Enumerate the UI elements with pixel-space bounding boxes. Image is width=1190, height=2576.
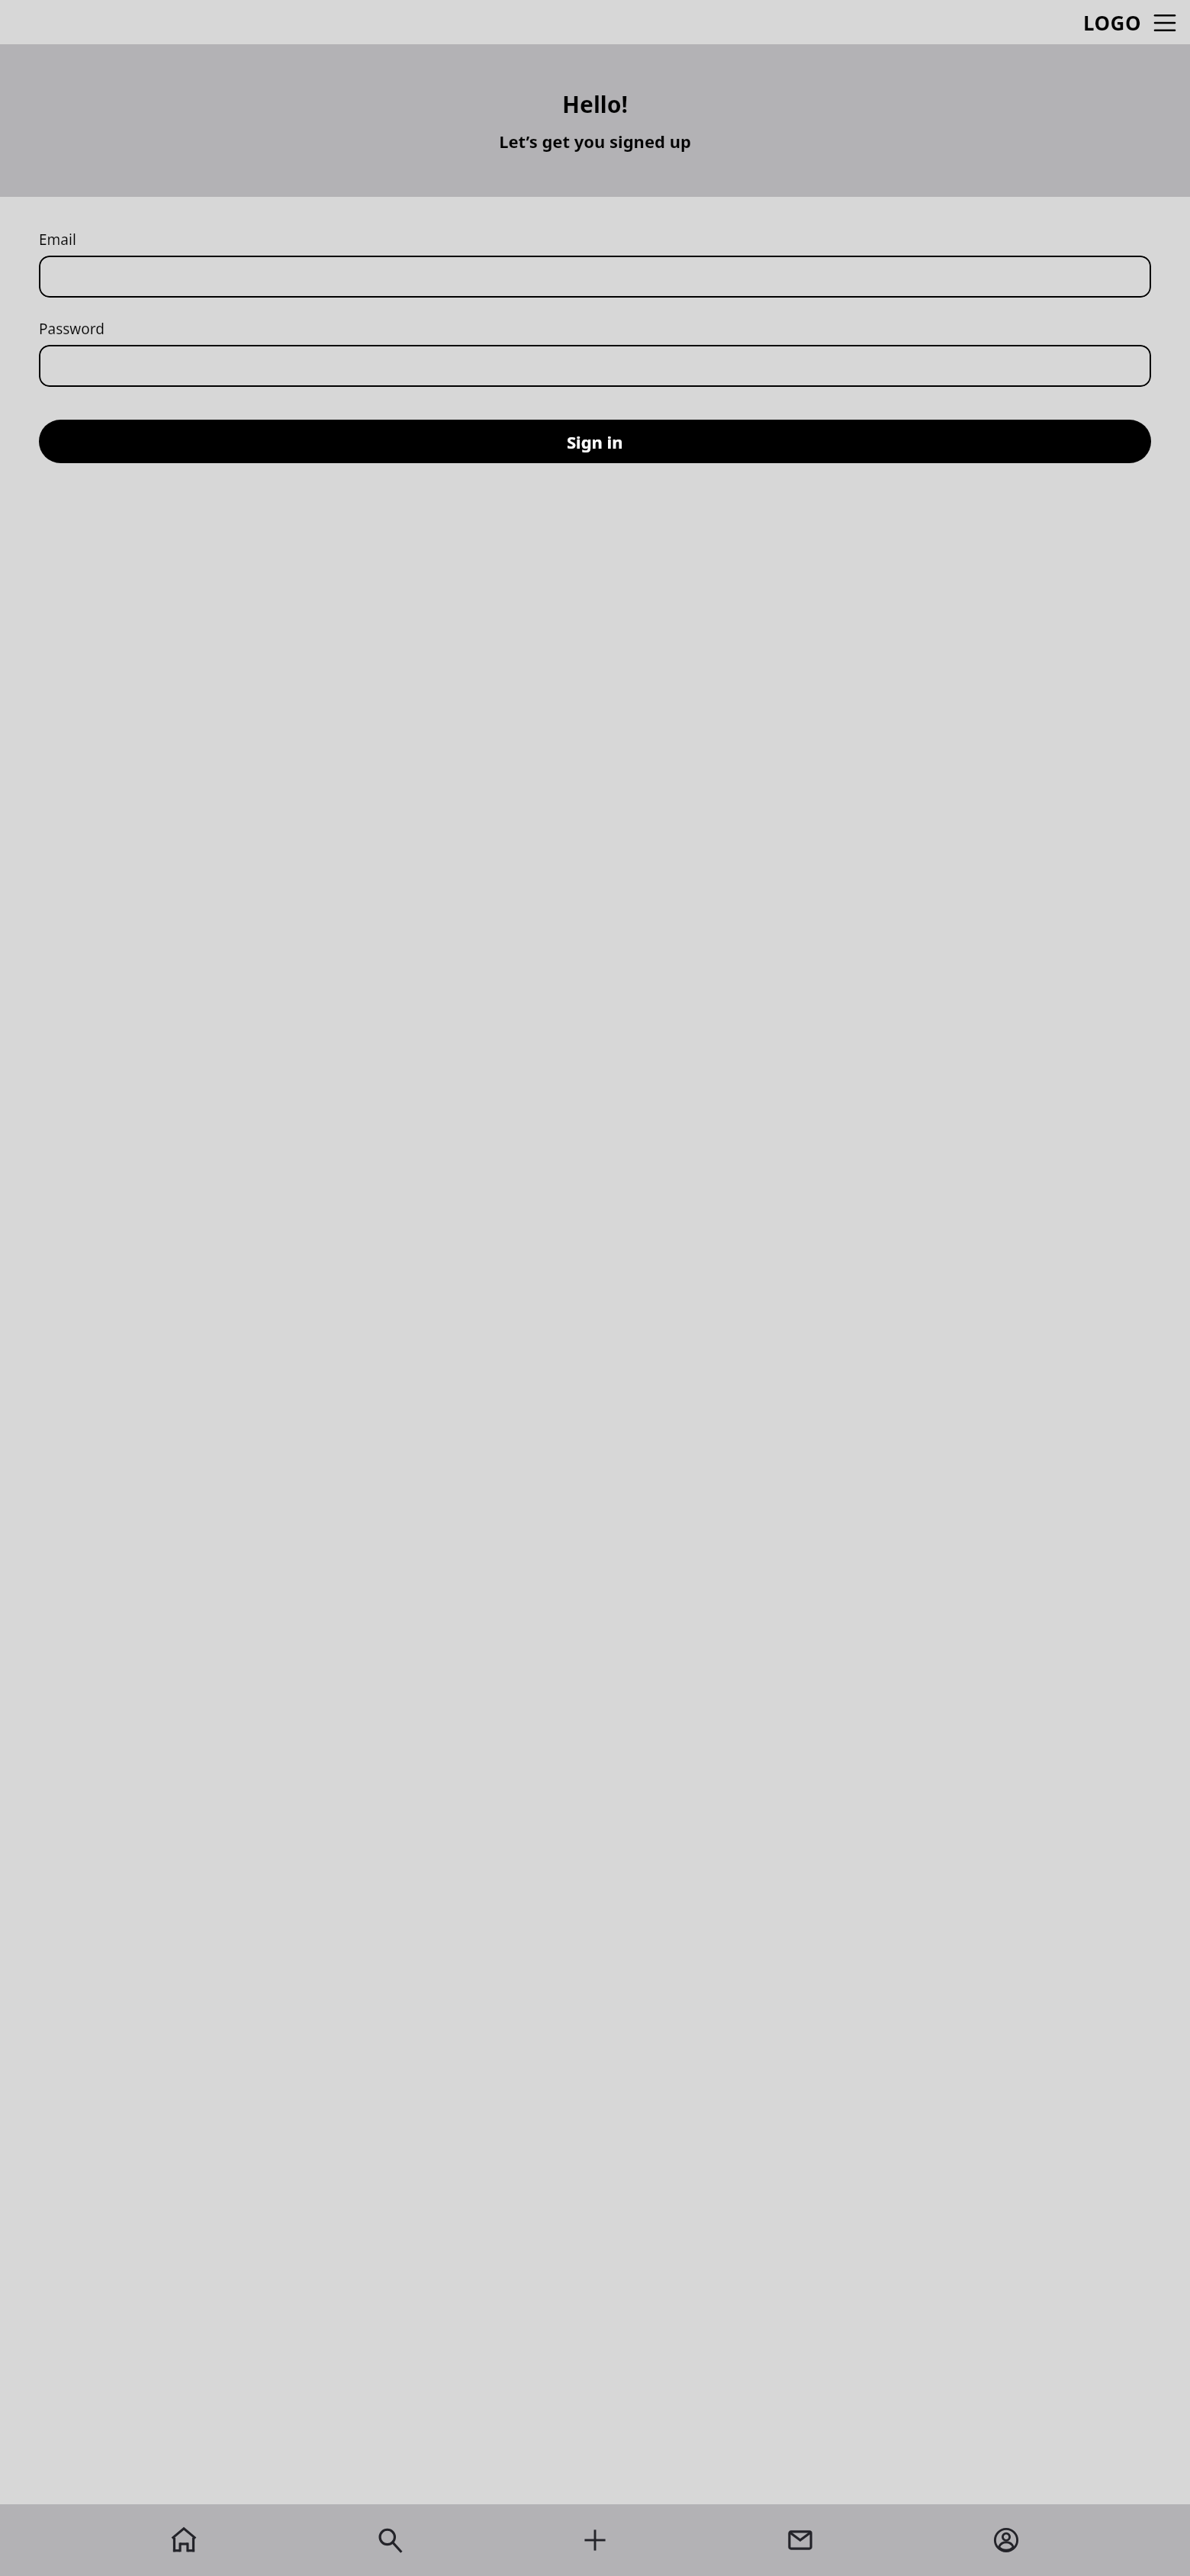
button[interactable]: Mail — [779, 2519, 822, 2562]
staticText: Email — [39, 230, 76, 250]
button[interactable]: Search — [368, 2519, 411, 2562]
button[interactable]: Add — [574, 2519, 616, 2562]
staticText: LOGO — [1083, 9, 1141, 36]
button[interactable]: Sign in — [39, 420, 1151, 463]
staticText: Let’s get you signed up — [499, 130, 691, 153]
staticText: Password — [39, 319, 105, 339]
button[interactable]: Profile — [985, 2519, 1028, 2562]
button[interactable] — [39, 345, 1151, 387]
button[interactable]: Home — [162, 2519, 205, 2562]
staticText: Sign in — [567, 430, 623, 453]
button[interactable]: Open menu — [1152, 10, 1178, 36]
staticText: Hello! — [562, 89, 628, 120]
button[interactable] — [39, 256, 1151, 298]
button[interactable]: LOGO — [1082, 6, 1143, 39]
